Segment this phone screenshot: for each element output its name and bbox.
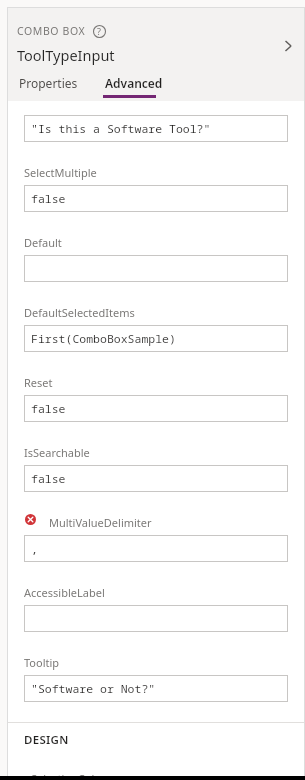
staticText: ,: [31, 541, 38, 557]
staticText: SelectMultiple: [24, 165, 97, 180]
staticText: ToolTypeInput: [17, 45, 115, 65]
button[interactable]: Collapse panel: [271, 29, 305, 63]
staticText: Default: [24, 235, 62, 250]
button[interactable]: ,: [24, 535, 288, 562]
button[interactable]: "Is this a Software Tool?": [24, 115, 288, 142]
button[interactable]: Help: [92, 24, 106, 38]
button[interactable]: false: [24, 465, 288, 492]
staticText: "Software or Not?": [31, 681, 156, 697]
staticText: false: [31, 471, 66, 487]
button[interactable]: false: [24, 395, 288, 422]
staticText: ?: [97, 25, 101, 37]
staticText: Tooltip: [24, 655, 60, 670]
staticText: COMBO BOX: [17, 24, 86, 38]
button[interactable]: First(ComboBoxSample): [24, 325, 288, 352]
button[interactable]: false: [24, 185, 288, 212]
staticText: Properties: [19, 75, 78, 91]
staticText: DESIGN: [24, 732, 69, 748]
staticText: Reset: [24, 375, 53, 390]
button[interactable]: [24, 255, 288, 282]
staticText: AccessibleLabel: [24, 585, 105, 600]
staticText: DefaultSelectedItems: [24, 305, 135, 320]
staticText: Advanced: [105, 75, 163, 91]
staticText: SelectionColor: [31, 771, 106, 780]
button[interactable]: Properties: [17, 75, 80, 101]
staticText: IsSearchable: [24, 445, 90, 460]
staticText: false: [31, 191, 66, 207]
staticText: First(ComboBoxSample): [31, 331, 176, 347]
button[interactable]: Advanced: [103, 75, 165, 101]
staticText: false: [31, 401, 66, 417]
staticText: "Is this a Software Tool?": [31, 121, 211, 137]
button[interactable]: "Software or Not?": [24, 675, 288, 702]
staticText: MultiValueDelimiter: [49, 515, 152, 530]
other: Error: [25, 514, 36, 525]
button[interactable]: [24, 605, 288, 632]
